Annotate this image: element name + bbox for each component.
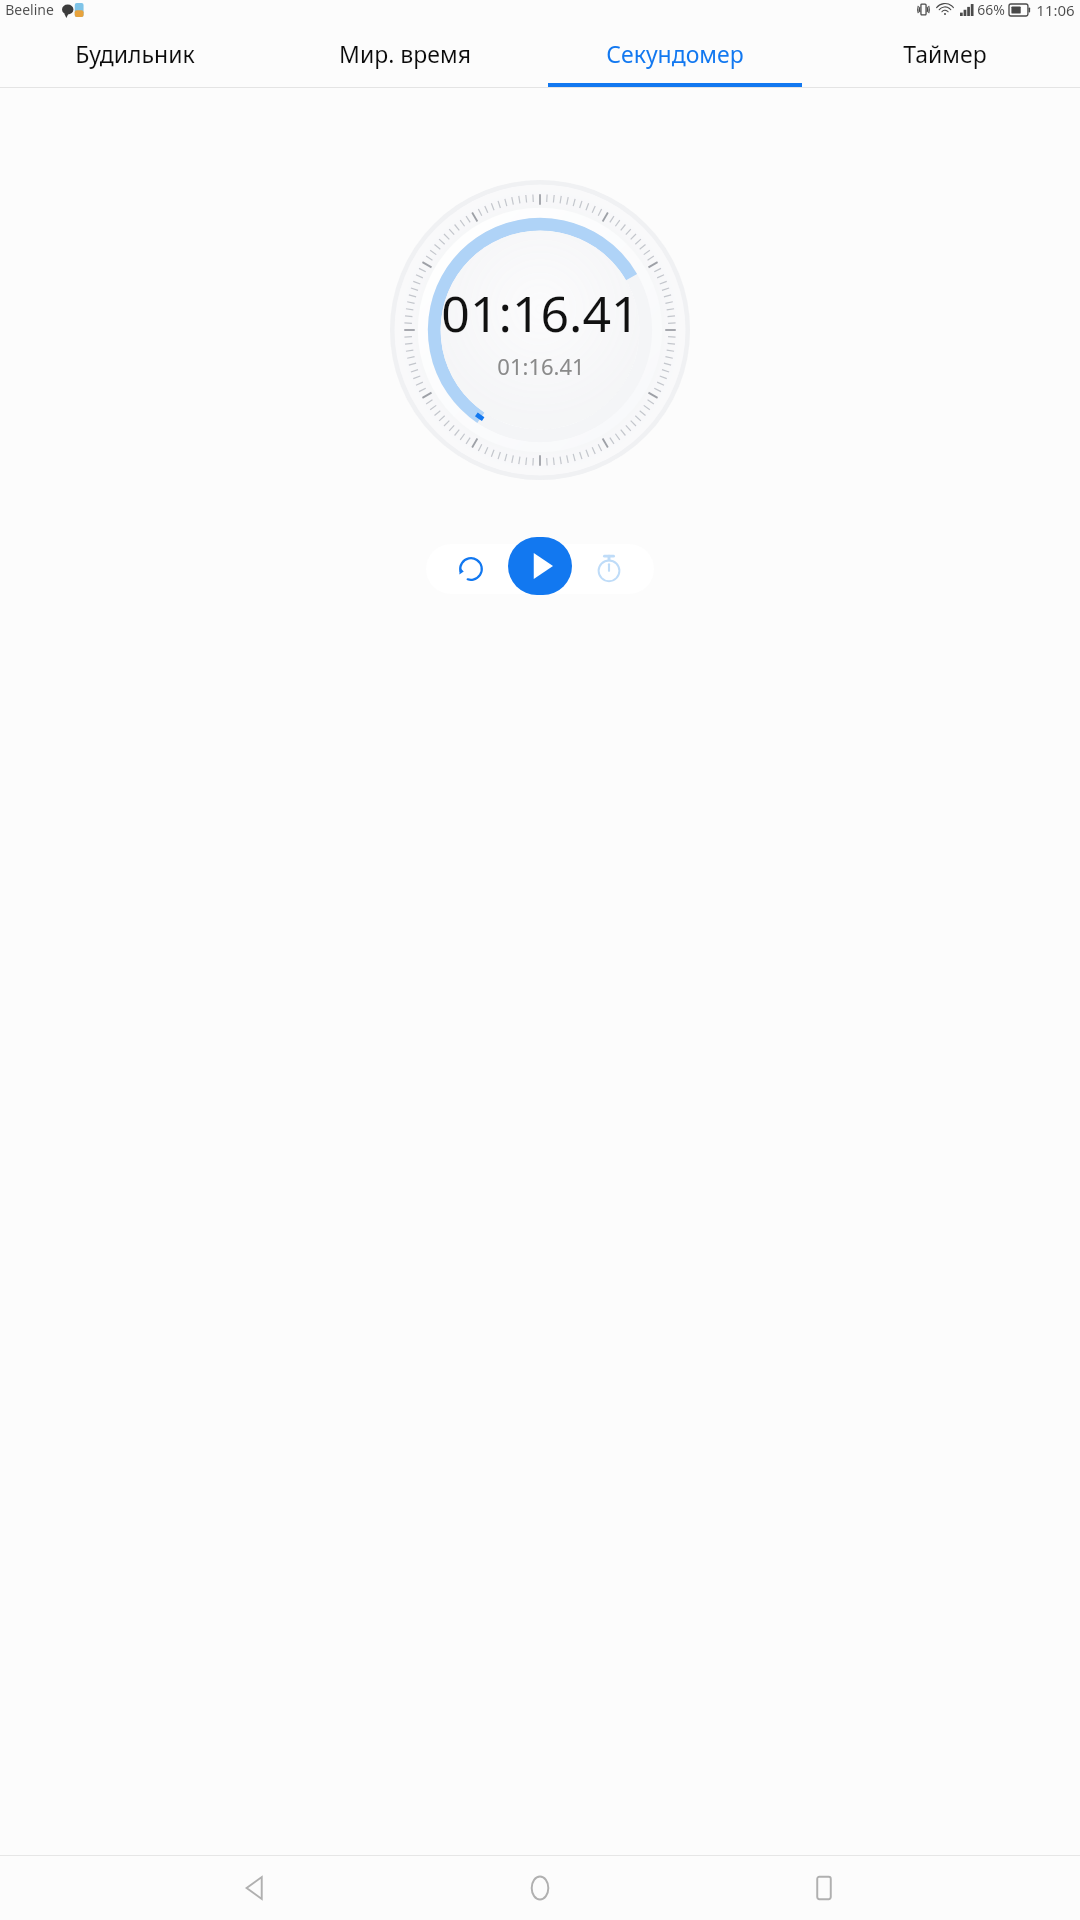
staticText: Таймер [903,38,987,69]
button[interactable]: Мир. время [270,19,540,87]
staticText: 01:16.41 [497,351,585,381]
button[interactable]: Recents [796,1860,852,1916]
staticText: Будильник [75,38,195,69]
button[interactable]: Home [512,1860,568,1916]
button[interactable]: Reset [448,546,494,592]
button[interactable]: Back [228,1860,284,1916]
button[interactable]: Start [508,537,572,595]
button[interactable]: Таймер [810,19,1080,87]
staticText: 01:16.41 [441,279,640,347]
staticText: 11:06 [1036,0,1075,19]
staticText: Мир. время [339,38,471,69]
staticText: Секундомер [606,38,744,69]
button[interactable]: Lap [586,546,632,592]
button[interactable]: Секундомер [540,19,810,87]
staticText: 66% [977,0,1005,19]
button[interactable]: Будильник [0,19,270,87]
staticText: Beeline [5,0,54,19]
